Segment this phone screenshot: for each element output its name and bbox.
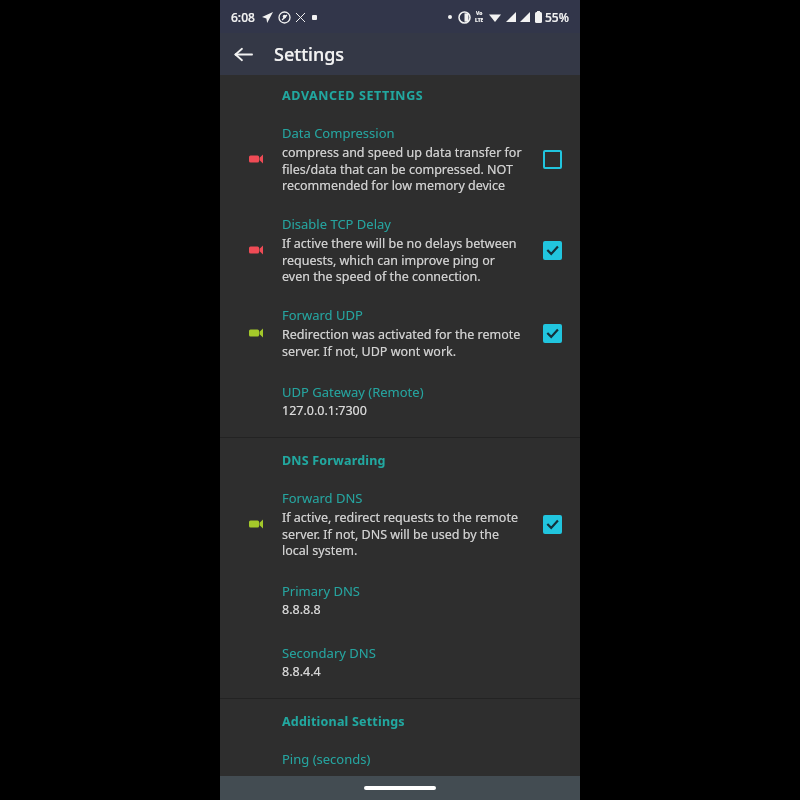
staticText: 55% — [545, 9, 569, 25]
staticText: Disable TCP Delay — [282, 215, 391, 233]
staticText: Primary DNS — [282, 582, 360, 600]
button[interactable]: UDP Gateway (Remote) — [220, 379, 580, 423]
button[interactable]: Forward UDP — [220, 300, 580, 365]
staticText: Redirection was activated for the remote… — [282, 326, 526, 359]
staticText: Forward UDP — [282, 306, 363, 324]
staticText: Vo — [476, 10, 483, 17]
button[interactable]: Primary DNS — [220, 578, 580, 622]
staticText: Settings — [274, 42, 345, 67]
button[interactable]: Data Compression — [220, 118, 580, 199]
staticText: LTE — [475, 17, 484, 24]
staticText: 8.8.8.8 — [282, 601, 321, 618]
staticText: Additional Settings — [282, 713, 405, 730]
staticText: ADVANCED SETTINGS — [282, 87, 424, 104]
button[interactable]: Secondary DNS — [220, 640, 580, 684]
button[interactable]: Ping (seconds) — [220, 746, 580, 776]
button[interactable]: Back — [220, 33, 266, 75]
staticText: Ping (seconds) — [282, 750, 371, 768]
staticText: Forward DNS — [282, 489, 363, 507]
button[interactable] — [532, 230, 572, 270]
button[interactable] — [532, 139, 572, 179]
staticText: If active, redirect requests to the remo… — [282, 509, 526, 558]
staticText: 127.0.0.1:7300 — [282, 402, 367, 419]
staticText: If active there will be no delays betwee… — [282, 235, 526, 284]
staticText: DNS Forwarding — [282, 452, 386, 469]
staticText: compress and speed up data transfer for … — [282, 144, 526, 193]
button[interactable]: Forward DNS — [220, 483, 580, 564]
staticText: 6:08 — [231, 9, 255, 25]
button[interactable]: Disable TCP Delay — [220, 209, 580, 290]
staticText: UDP Gateway (Remote) — [282, 383, 424, 401]
staticText: Data Compression — [282, 124, 395, 142]
staticText: 8.8.4.4 — [282, 663, 321, 680]
button[interactable] — [532, 504, 572, 544]
button[interactable] — [532, 313, 572, 353]
staticText: Secondary DNS — [282, 644, 376, 662]
